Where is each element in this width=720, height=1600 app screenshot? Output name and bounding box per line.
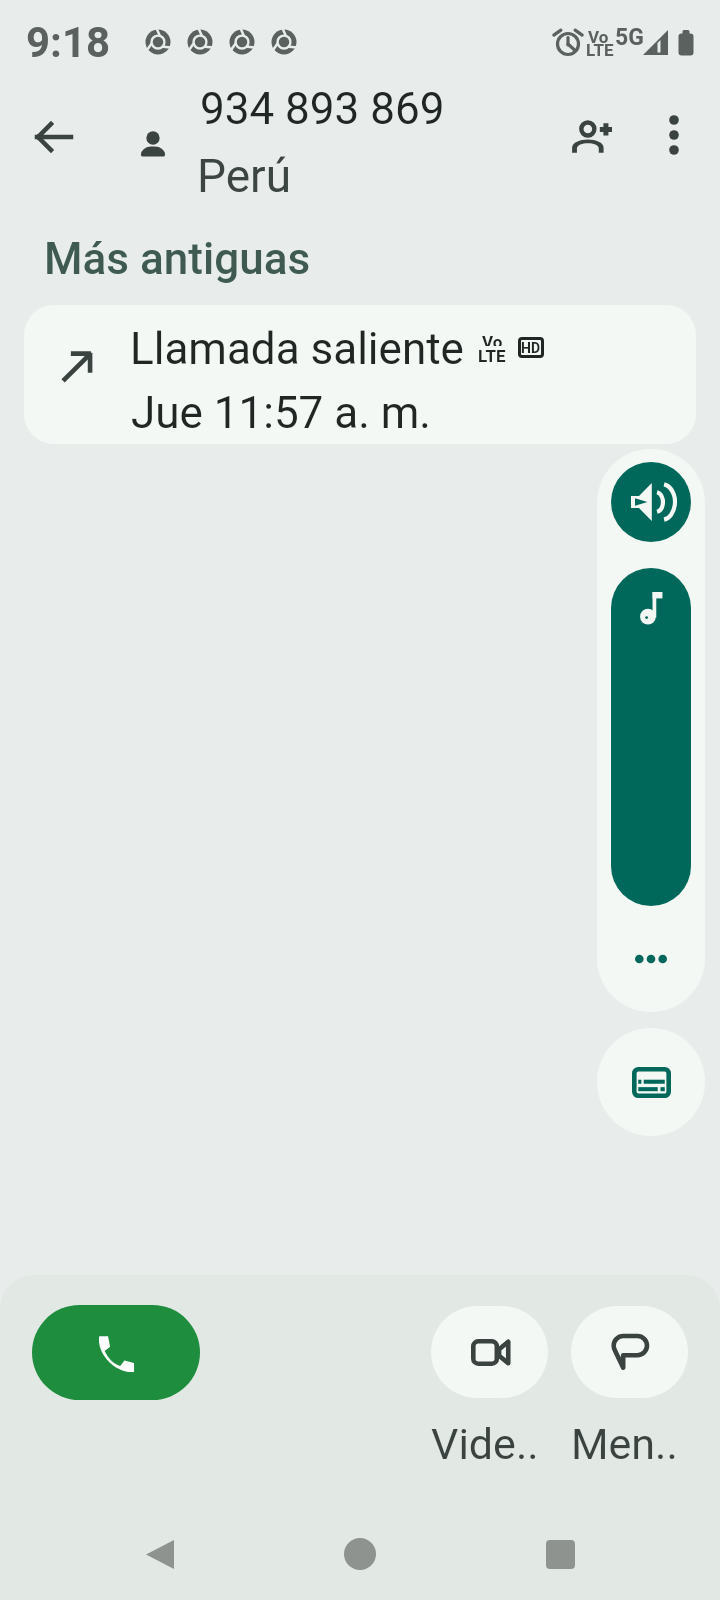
staticText: Jue 11:57 a. m. <box>131 387 431 439</box>
staticText: LTE <box>586 40 614 60</box>
staticText: 5G <box>615 24 644 51</box>
button[interactable]: More options <box>642 103 706 167</box>
button[interactable]: Vide... <box>431 1306 548 1469</box>
button[interactable]: Call <box>32 1305 200 1400</box>
button[interactable]: Add contact <box>559 106 623 170</box>
button[interactable]: Recents <box>520 1514 600 1594</box>
button[interactable]: Live caption <box>597 1028 705 1136</box>
staticText: Llamada saliente <box>130 323 464 375</box>
button[interactable]: Back <box>120 1514 200 1594</box>
button[interactable]: Back <box>22 105 86 169</box>
staticText: Perú <box>197 149 292 203</box>
button[interactable]: Music <box>611 568 691 906</box>
button[interactable]: Speaker <box>611 462 691 542</box>
staticText: Vo <box>482 332 503 346</box>
button[interactable]: Men... <box>571 1306 688 1469</box>
staticText: Men... <box>571 1419 688 1469</box>
staticText: Vo <box>588 27 609 47</box>
staticText: LTE <box>478 346 506 366</box>
staticText: Vide... <box>431 1419 548 1469</box>
staticText: 934 893 869 <box>200 83 445 135</box>
staticText: HD <box>521 340 541 355</box>
button[interactable]: Llamada saliente <box>24 305 696 444</box>
button[interactable]: More <box>611 919 691 999</box>
button[interactable]: Home <box>320 1514 400 1594</box>
staticText: 9:18 <box>26 18 111 67</box>
staticText: Más antiguas <box>44 233 311 285</box>
